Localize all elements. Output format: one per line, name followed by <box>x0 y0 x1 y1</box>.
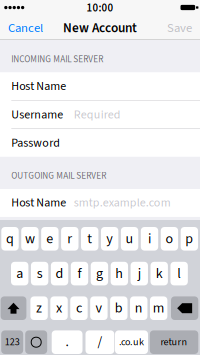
staticText: h <box>115 264 123 283</box>
staticText: Host Name <box>11 194 66 211</box>
staticText: d <box>56 264 64 283</box>
button[interactable]: u <box>121 227 138 251</box>
button[interactable]: h <box>111 262 128 285</box>
staticText: Password <box>11 134 60 151</box>
staticText: x <box>56 298 62 318</box>
staticText: w <box>25 229 35 249</box>
staticText: v <box>95 298 102 318</box>
staticText: 10:00 <box>86 0 113 16</box>
button[interactable]: Password <box>0 129 200 157</box>
staticText: / <box>97 333 102 352</box>
staticText: o <box>165 229 173 249</box>
button[interactable]: Host Name <box>0 189 200 217</box>
button[interactable]: Username <box>0 101 200 128</box>
staticText: m <box>153 298 165 318</box>
staticText: q <box>6 229 14 249</box>
staticText: a <box>16 264 23 283</box>
button[interactable]: Delete <box>171 296 198 320</box>
staticText: Host Name <box>11 78 66 95</box>
staticText: n <box>135 298 143 318</box>
staticText: .co.uk <box>119 335 144 349</box>
button[interactable]: f <box>71 262 88 285</box>
button[interactable]: Emoji <box>25 330 47 354</box>
staticText: r <box>67 229 72 249</box>
button[interactable]: d <box>51 262 68 285</box>
staticText: j <box>138 264 141 283</box>
button[interactable]: g <box>91 262 108 285</box>
button[interactable]: o <box>161 227 178 251</box>
button[interactable]: a <box>11 262 28 285</box>
button[interactable]: t <box>81 227 98 251</box>
button[interactable]: l <box>170 262 188 285</box>
button[interactable]: w <box>21 227 39 251</box>
staticText: 123 <box>5 335 20 349</box>
staticText: smtp.example.com <box>74 194 171 211</box>
staticText: c <box>76 298 82 318</box>
staticText: i <box>148 229 151 249</box>
button[interactable]: s <box>31 262 48 285</box>
button[interactable]: m <box>150 296 167 320</box>
button[interactable]: Period <box>52 330 82 354</box>
button[interactable]: r <box>61 227 78 251</box>
staticText: Username <box>11 106 63 123</box>
staticText: t <box>87 229 92 249</box>
staticText: p <box>185 229 193 249</box>
staticText: b <box>115 298 123 318</box>
staticText: New Account <box>63 18 137 37</box>
staticText: f <box>77 264 81 283</box>
staticText: return <box>161 335 188 349</box>
staticText: Required <box>74 106 121 123</box>
button[interactable]: b <box>110 296 127 320</box>
staticText: e <box>46 229 53 249</box>
button[interactable]: .co.uk <box>115 330 148 354</box>
button[interactable]: Cancel <box>0 16 56 40</box>
button[interactable]: n <box>130 296 147 320</box>
button[interactable]: k <box>150 262 168 285</box>
staticText: . <box>66 333 69 352</box>
button[interactable]: Save <box>152 16 200 40</box>
button[interactable]: y <box>101 227 118 251</box>
button[interactable]: Return <box>150 330 198 354</box>
staticText: OUTGOING MAIL SERVER <box>11 169 106 182</box>
staticText: s <box>37 264 43 283</box>
staticText: g <box>96 264 103 283</box>
button[interactable]: e <box>41 227 59 251</box>
button[interactable]: q <box>1 227 19 251</box>
staticText: k <box>156 264 163 283</box>
button[interactable]: Numbers <box>1 330 23 354</box>
button[interactable]: p <box>181 227 198 251</box>
button[interactable]: j <box>131 262 148 285</box>
staticText: y <box>106 229 113 249</box>
button[interactable]: v <box>90 296 108 320</box>
staticText: z <box>36 298 42 318</box>
staticText: Cancel <box>8 19 43 37</box>
staticText: INCOMING MAIL SERVER <box>11 53 103 66</box>
button[interactable]: Slash <box>85 330 114 354</box>
button[interactable]: c <box>70 296 88 320</box>
staticText: u <box>126 229 134 249</box>
button[interactable]: Host Name <box>0 72 200 100</box>
button[interactable]: i <box>141 227 158 251</box>
staticText: l <box>177 264 181 283</box>
staticText: Save <box>167 19 192 37</box>
button[interactable]: x <box>50 296 68 320</box>
button[interactable]: z <box>30 296 48 320</box>
button[interactable]: Shift <box>1 296 26 320</box>
